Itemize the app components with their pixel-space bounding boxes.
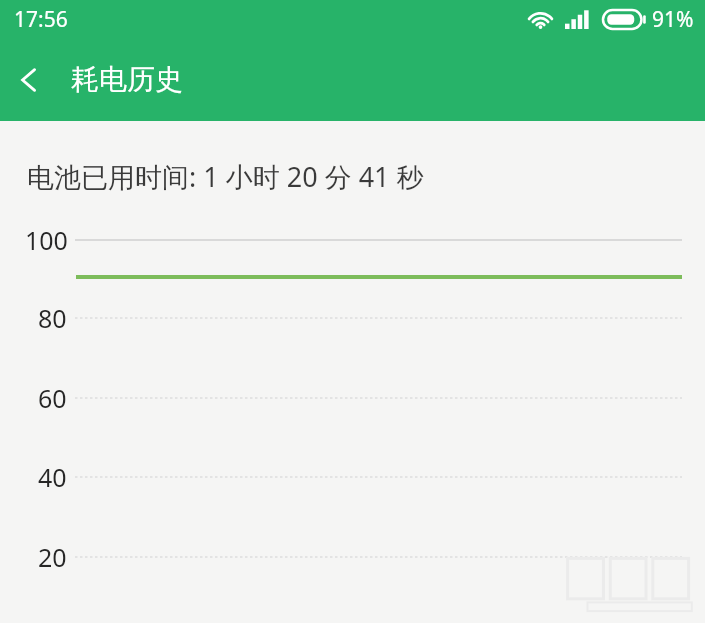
staticText: 40: [38, 460, 67, 494]
staticText: 91%: [652, 5, 694, 34]
staticText: 60: [38, 381, 67, 415]
staticText: 17:56: [14, 5, 68, 34]
staticText: 100: [25, 223, 68, 257]
staticText: 电池已用时间: 1 小时 20 分 41 秒: [27, 158, 424, 195]
staticText: 耗电历史: [71, 62, 183, 97]
staticText: 20: [38, 540, 67, 574]
staticText: 80: [38, 301, 67, 335]
button[interactable]: Back: [0, 38, 58, 121]
